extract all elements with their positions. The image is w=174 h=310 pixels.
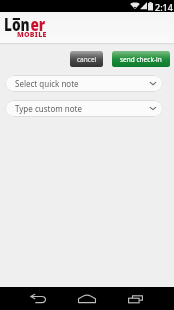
button[interactable]: cancel <box>70 51 103 67</box>
staticText: send check-in <box>120 55 162 64</box>
button[interactable]: Type custom note <box>5 100 163 117</box>
staticText: MOBILE <box>17 30 47 40</box>
button[interactable]: send check-in <box>112 51 170 67</box>
button[interactable]: Back <box>15 287 61 310</box>
staticText: Lon <box>4 13 30 36</box>
staticText: er <box>30 13 46 36</box>
button[interactable]: Select quick note <box>5 75 163 92</box>
button[interactable]: Home <box>64 287 110 310</box>
button[interactable]: Recent apps <box>112 287 158 310</box>
staticText: Type custom note <box>15 103 82 114</box>
staticText: 2:14 <box>155 1 173 13</box>
staticText: cancel <box>77 55 97 64</box>
staticText: Select quick note <box>15 78 79 89</box>
